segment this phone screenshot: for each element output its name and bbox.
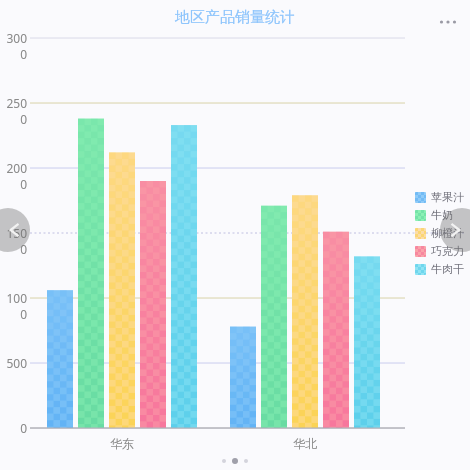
- staticText: 巧克力: [431, 244, 464, 258]
- staticText: 华东: [97, 436, 147, 451]
- button[interactable]: 柳橙汁: [415, 226, 464, 240]
- button[interactable]: 牛肉干: [415, 262, 464, 276]
- button[interactable]: Next: [440, 208, 470, 252]
- staticText: 3000: [0, 30, 27, 62]
- staticText: 1000: [0, 290, 27, 322]
- staticText: 0: [0, 420, 27, 436]
- staticText: 牛肉干: [431, 262, 464, 276]
- staticText: 2000: [0, 160, 27, 192]
- button[interactable]: Previous: [0, 208, 30, 252]
- button[interactable]: 巧克力: [415, 244, 464, 258]
- button[interactable]: Page 3: [244, 459, 248, 463]
- staticText: 500: [0, 355, 27, 371]
- staticText: 2500: [0, 95, 27, 127]
- button[interactable]: 牛奶: [415, 208, 453, 222]
- button[interactable]: Page 2: [232, 458, 238, 464]
- staticText: 苹果汁: [431, 190, 464, 204]
- staticText: 柳橙汁: [431, 226, 464, 240]
- staticText: 地区产品销量统计: [175, 8, 295, 27]
- button[interactable]: More options: [434, 8, 462, 36]
- staticText: 1500: [0, 225, 27, 257]
- staticText: 华北: [280, 436, 330, 451]
- button[interactable]: Page 1: [222, 459, 226, 463]
- button[interactable]: 苹果汁: [415, 190, 464, 204]
- staticText: 牛奶: [431, 208, 453, 222]
